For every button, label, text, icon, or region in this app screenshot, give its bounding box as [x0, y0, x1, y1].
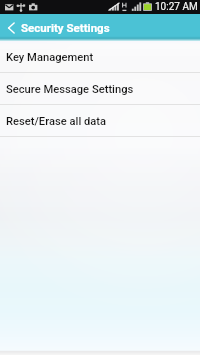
staticText: Key Management — [6, 51, 94, 64]
button[interactable]: Secure Message Settings — [0, 73, 200, 105]
staticText: 10:27 AM — [155, 1, 198, 13]
button[interactable]: Reset/Erase all data — [0, 105, 200, 137]
button[interactable]: Navigate up — [0, 14, 21, 41]
staticText: Security Settings — [21, 21, 110, 34]
staticText: Reset/Erase all data — [6, 115, 107, 128]
staticText: Secure Message Settings — [6, 83, 134, 96]
button[interactable]: Key Management — [0, 41, 200, 73]
